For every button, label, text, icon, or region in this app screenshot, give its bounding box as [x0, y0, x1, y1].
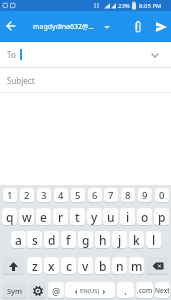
staticText: @ — [52, 285, 61, 297]
staticText: j — [118, 232, 122, 248]
staticText: g — [82, 232, 90, 248]
button[interactable] — [2, 17, 20, 35]
staticText: 7 — [108, 189, 114, 202]
button[interactable] — [29, 282, 46, 299]
button[interactable]: f — [61, 231, 76, 249]
button[interactable] — [129, 18, 147, 36]
staticText: z — [32, 258, 38, 274]
button[interactable]: 3 — [37, 188, 51, 203]
button[interactable]: a — [11, 231, 26, 249]
staticText: 3 — [41, 189, 47, 202]
button[interactable] — [2, 257, 24, 275]
button[interactable]: 5 — [71, 188, 85, 203]
staticText: y — [91, 209, 98, 225]
button[interactable] — [146, 257, 169, 275]
button[interactable]: y — [87, 208, 102, 226]
button[interactable]: l — [146, 231, 161, 249]
button[interactable]: r — [53, 208, 68, 226]
staticText: p — [158, 209, 166, 225]
button[interactable]: b — [95, 257, 110, 275]
staticText: magdydina632@... — [33, 22, 94, 32]
staticText: w — [22, 209, 32, 225]
button[interactable]: 7 — [104, 188, 118, 203]
staticText: v — [82, 258, 89, 274]
button[interactable]: j — [112, 231, 127, 249]
staticText: t — [75, 209, 80, 225]
button[interactable]: z — [27, 257, 42, 275]
button[interactable]: h — [95, 231, 110, 249]
staticText: 8:05 PM — [139, 2, 162, 10]
staticText: 23% — [118, 2, 130, 10]
button[interactable]: @ — [48, 282, 64, 299]
staticText: m — [131, 258, 143, 274]
staticText: To — [7, 49, 16, 60]
staticText: 1 — [7, 189, 13, 202]
button[interactable]: .com — [136, 282, 153, 299]
staticText: Subject — [7, 75, 35, 86]
button[interactable]: g — [78, 231, 93, 249]
button[interactable]: i — [120, 208, 135, 226]
staticText: 5 — [75, 189, 81, 202]
button[interactable]: Next — [155, 282, 170, 299]
button[interactable]: 8 — [121, 188, 135, 203]
staticText: l — [152, 232, 156, 248]
button[interactable]: 6 — [88, 188, 102, 203]
staticText: .com — [137, 286, 153, 295]
staticText: 2 — [24, 189, 30, 202]
button[interactable]: o — [137, 208, 152, 226]
button[interactable]: t — [70, 208, 85, 226]
staticText: 0 — [159, 189, 165, 202]
button[interactable]: 4 — [54, 188, 68, 203]
button[interactable]: d — [44, 231, 59, 249]
staticText: k — [133, 232, 140, 248]
button[interactable] — [152, 18, 170, 36]
button[interactable]: c — [61, 257, 76, 275]
button[interactable]: v — [78, 257, 93, 275]
staticText: s — [32, 232, 38, 248]
button[interactable]: . — [117, 282, 134, 299]
button[interactable]: p — [154, 208, 169, 226]
button[interactable]: e — [36, 208, 51, 226]
staticText: u — [107, 209, 115, 225]
staticText: a — [15, 232, 22, 248]
staticText: n — [116, 258, 124, 274]
staticText: 9 — [142, 189, 148, 202]
staticText: e — [40, 209, 47, 225]
button[interactable]: w — [19, 208, 34, 226]
button[interactable]: Sym — [2, 282, 27, 299]
staticText: 4 — [58, 189, 64, 202]
button[interactable]: Subject — [0, 68, 171, 92]
button[interactable]: magdydina632@... — [33, 11, 111, 42]
staticText: . — [124, 284, 127, 298]
staticText: d — [48, 232, 56, 248]
button[interactable]: 1 — [3, 188, 17, 203]
staticText: h — [99, 232, 107, 248]
staticText: 8 — [125, 189, 131, 202]
button[interactable]: EN(US) — [65, 282, 115, 299]
staticText: 6 — [92, 189, 98, 202]
button[interactable]: s — [27, 231, 42, 249]
button[interactable]: q — [2, 208, 17, 226]
button[interactable]: k — [129, 231, 144, 249]
button[interactable]: x — [44, 257, 59, 275]
staticText: r — [58, 209, 64, 225]
staticText: c — [66, 258, 72, 274]
staticText: f — [66, 232, 71, 248]
button[interactable]: n — [112, 257, 127, 275]
staticText: x — [48, 258, 55, 274]
staticText: i — [126, 209, 130, 225]
staticText: Next — [155, 286, 170, 295]
button[interactable]: 2 — [20, 188, 34, 203]
staticText: EN(US) — [80, 287, 100, 295]
staticText: q — [6, 209, 14, 225]
button[interactable]: m — [129, 257, 144, 275]
button[interactable]: To — [0, 42, 171, 67]
button[interactable]: u — [103, 208, 118, 226]
button[interactable]: 9 — [138, 188, 152, 203]
button[interactable]: 0 — [155, 188, 169, 203]
staticText: Sym — [7, 286, 23, 296]
staticText: b — [99, 258, 107, 274]
staticText: o — [141, 209, 149, 225]
